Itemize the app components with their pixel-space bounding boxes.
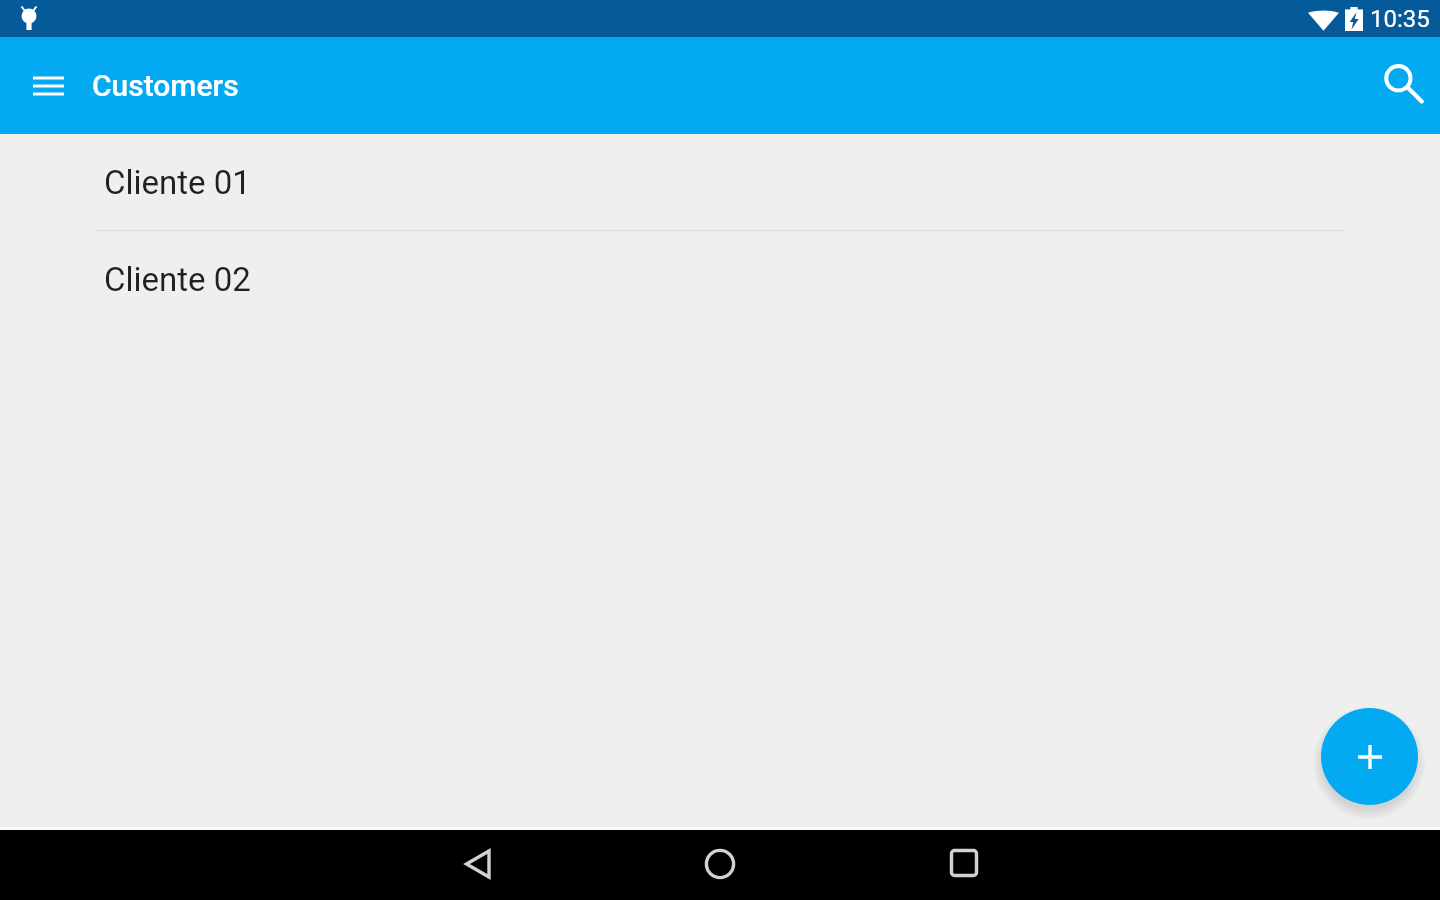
button[interactable]: Cliente 01 (0, 134, 1440, 230)
staticText: Cliente 01 (104, 163, 251, 202)
staticText: 10:35 (1370, 5, 1430, 33)
button[interactable]: Home (685, 829, 755, 899)
button[interactable]: Back (443, 829, 513, 899)
button[interactable]: Open navigation drawer (14, 52, 82, 120)
button[interactable]: Recent apps (929, 828, 999, 898)
button[interactable]: Cliente 02 (0, 231, 1440, 327)
button[interactable]: Add customer (1321, 708, 1418, 805)
staticText: Cliente 02 (104, 260, 251, 299)
button[interactable]: Search (1363, 52, 1431, 120)
staticText: Customers (92, 68, 239, 103)
